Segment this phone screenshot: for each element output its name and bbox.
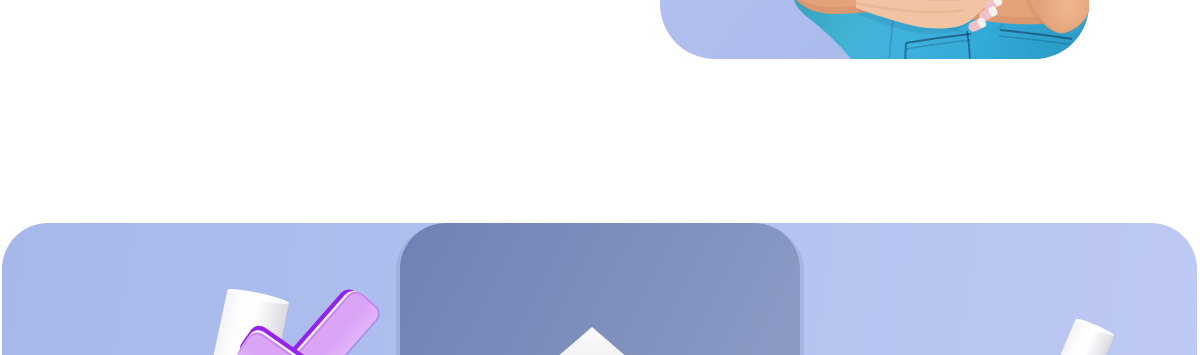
- button[interactable]: Health content carousel: [0, 0, 1200, 355]
